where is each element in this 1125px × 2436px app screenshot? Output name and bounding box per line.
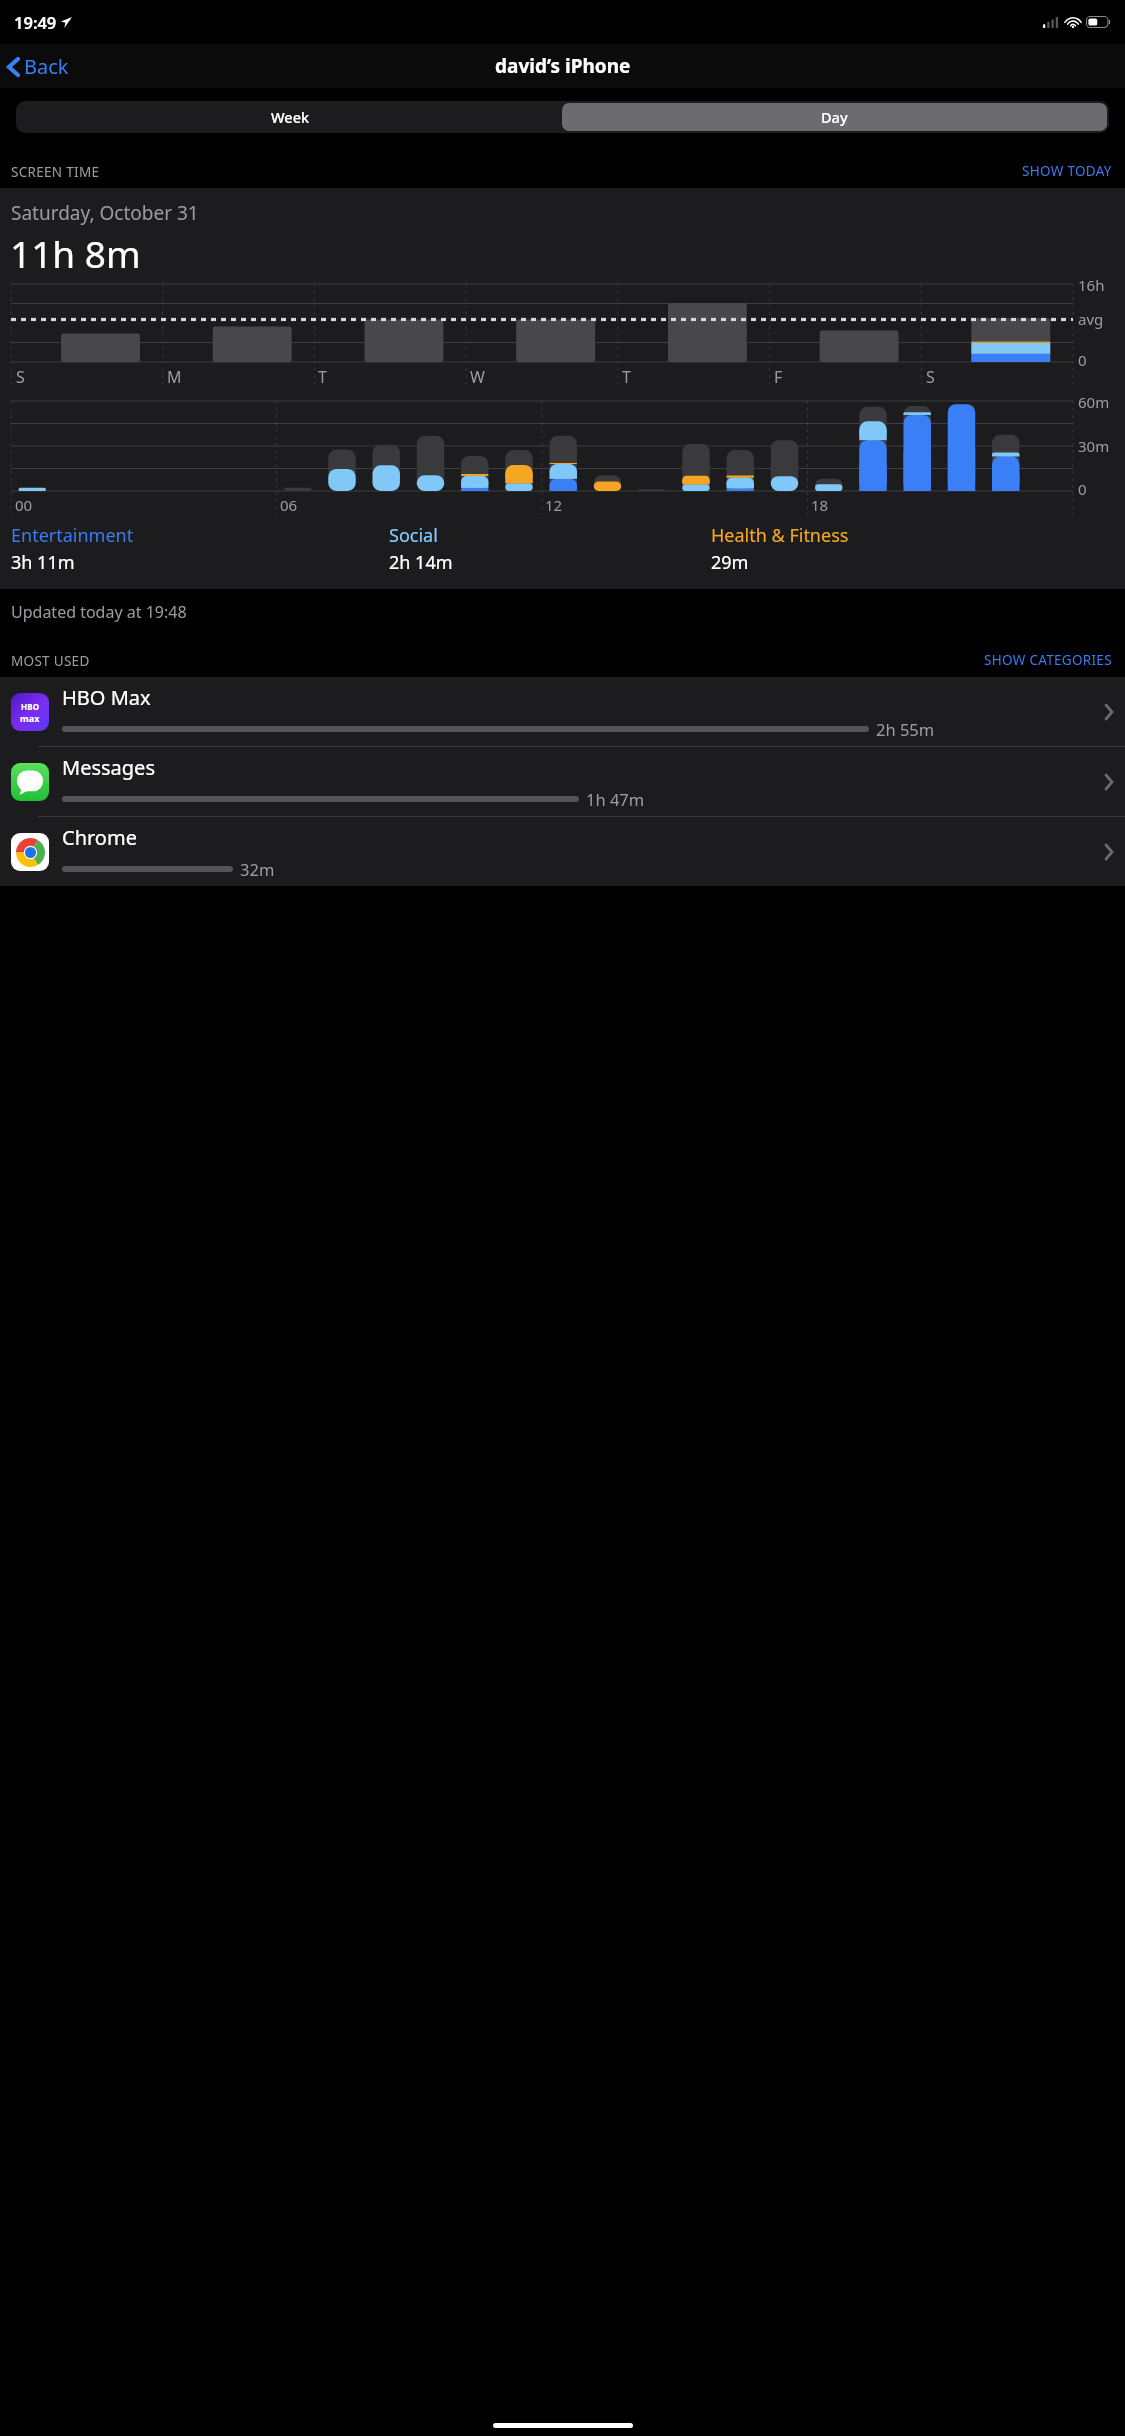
staticText: Messages: [62, 754, 155, 781]
staticText: Updated today at 19:48: [11, 601, 187, 623]
button[interactable]: Social: [389, 523, 711, 575]
button[interactable]: Messages: [0, 747, 1125, 816]
staticText: SCREEN TIME: [11, 163, 100, 181]
staticText: MOST USED: [11, 652, 90, 670]
button[interactable]: SHOW CATEGORIES: [982, 650, 1114, 670]
button[interactable]: Health & Fitness: [711, 523, 1114, 575]
staticText: Week: [271, 107, 310, 127]
button[interactable]: Chrome: [0, 817, 1125, 886]
staticText: 1h 47m: [586, 788, 645, 810]
staticText: Health & Fitness: [711, 523, 849, 548]
staticText: avg: [1078, 309, 1104, 329]
staticText: 60m: [1078, 392, 1110, 412]
staticText: T: [318, 366, 327, 388]
staticText: 3h 11m: [11, 550, 75, 575]
button[interactable]: Day: [562, 103, 1107, 131]
staticText: 00: [15, 495, 33, 515]
staticText: Day: [821, 107, 848, 127]
staticText: 12: [545, 495, 563, 515]
staticText: 2h 14m: [389, 550, 453, 575]
staticText: HBO: [21, 701, 40, 712]
staticText: HBO Max: [62, 684, 151, 711]
staticText: S: [16, 366, 25, 388]
staticText: Entertainment: [11, 523, 134, 548]
staticText: SHOW TODAY: [1022, 162, 1112, 180]
staticText: Chrome: [62, 824, 137, 851]
staticText: 30m: [1078, 436, 1110, 456]
staticText: SHOW CATEGORIES: [984, 651, 1112, 669]
staticText: 16h: [1078, 275, 1105, 295]
button[interactable]: Week: [18, 103, 562, 131]
staticText: 11h 8m: [10, 228, 141, 278]
staticText: M: [167, 366, 182, 388]
staticText: 19:49: [14, 11, 57, 33]
staticText: T: [622, 366, 631, 388]
button[interactable]: Entertainment: [11, 523, 389, 575]
staticText: W: [470, 366, 485, 388]
staticText: 0: [1078, 479, 1087, 499]
staticText: 0: [1078, 350, 1087, 370]
button[interactable]: HBO: [0, 677, 1125, 746]
staticText: 2h 55m: [876, 718, 935, 740]
staticText: 32m: [240, 858, 275, 880]
staticText: 18: [811, 495, 829, 515]
staticText: S: [926, 366, 935, 388]
staticText: Saturday, October 31: [11, 200, 199, 226]
staticText: 29m: [711, 550, 749, 575]
button[interactable]: Back: [0, 47, 79, 86]
staticText: Back: [24, 53, 69, 80]
staticText: david’s iPhone: [495, 53, 631, 79]
staticText: Social: [389, 523, 438, 548]
staticText: 06: [280, 495, 298, 515]
staticText: max: [20, 712, 40, 724]
staticText: F: [774, 366, 783, 388]
button[interactable]: SHOW TODAY: [1020, 161, 1114, 181]
